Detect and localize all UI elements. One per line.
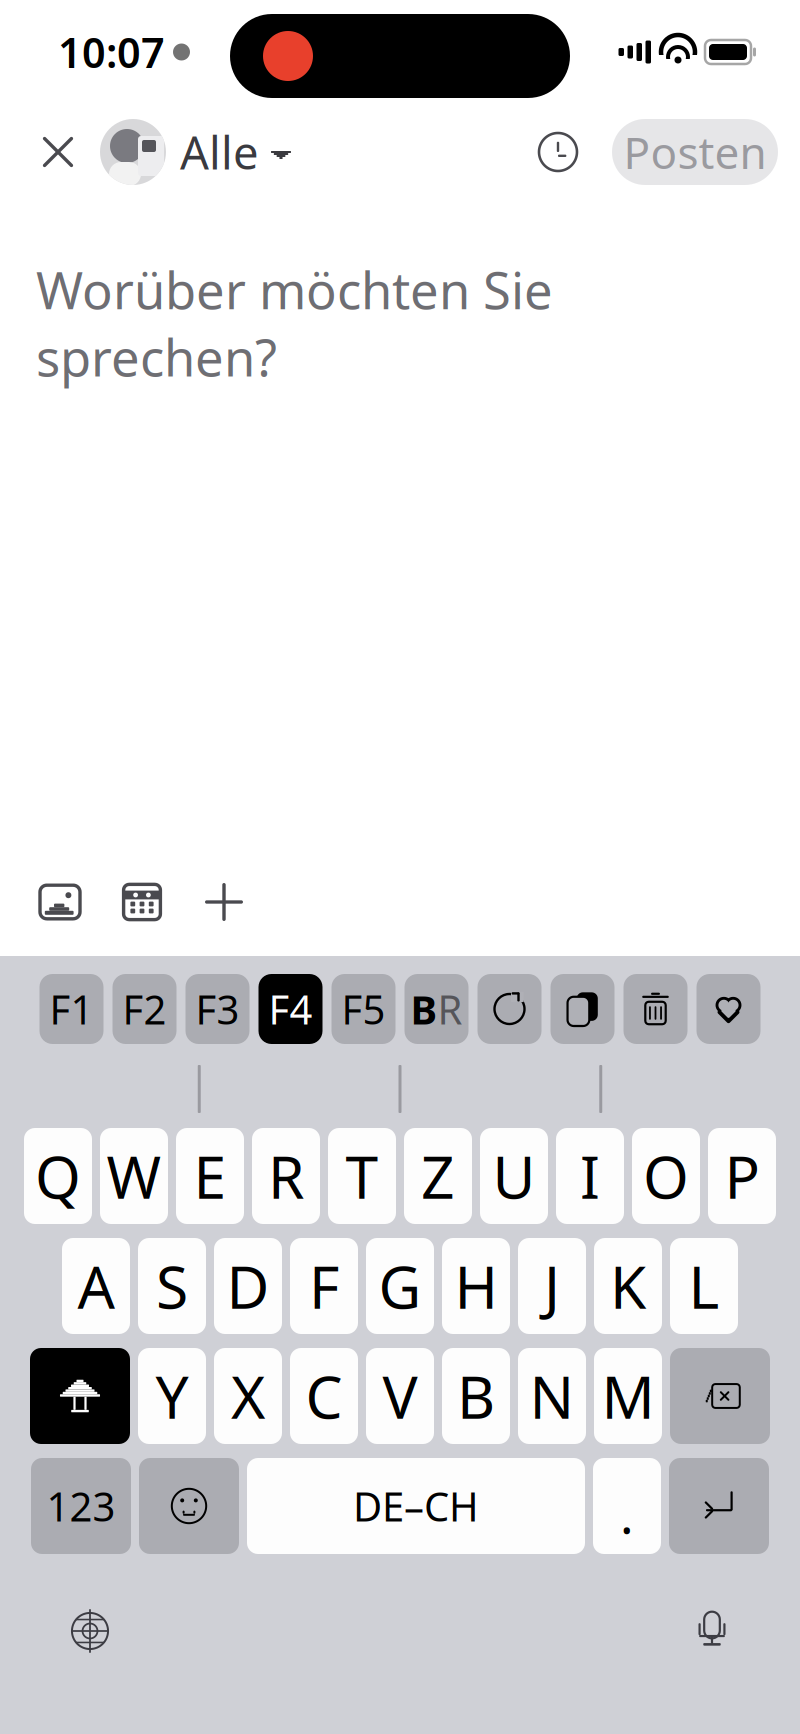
- button[interactable]: F: [290, 1238, 358, 1334]
- staticText: DE–CH: [353, 1479, 479, 1532]
- button[interactable]: [670, 1348, 770, 1444]
- staticText: B: [410, 982, 437, 1035]
- button[interactable]: M: [594, 1348, 662, 1444]
- button[interactable]: 123: [31, 1458, 131, 1554]
- button[interactable]: F3: [185, 974, 249, 1044]
- button[interactable]: Schedule: [522, 116, 594, 188]
- button[interactable]: S: [138, 1238, 206, 1334]
- button[interactable]: E: [176, 1128, 244, 1224]
- staticText: O: [643, 1137, 689, 1215]
- button[interactable]: J: [518, 1238, 586, 1334]
- staticText: N: [529, 1357, 574, 1435]
- button[interactable]: D: [214, 1238, 282, 1334]
- button[interactable]: K: [594, 1238, 662, 1334]
- button[interactable]: G: [366, 1238, 434, 1334]
- staticText: U: [492, 1137, 535, 1215]
- staticText: F5: [341, 982, 385, 1035]
- button[interactable]: Posten: [612, 119, 778, 185]
- staticText: L: [688, 1247, 719, 1325]
- button[interactable]: B: [442, 1348, 510, 1444]
- button[interactable]: P: [708, 1128, 776, 1224]
- button[interactable]: [30, 1348, 130, 1444]
- staticText: H: [454, 1247, 497, 1325]
- staticText: I: [580, 1137, 600, 1215]
- button[interactable]: [477, 974, 541, 1044]
- staticText: K: [610, 1247, 646, 1325]
- button[interactable]: H: [442, 1238, 510, 1334]
- button[interactable]: [139, 1458, 239, 1554]
- staticText: E: [193, 1137, 226, 1215]
- button[interactable]: [623, 974, 687, 1044]
- button[interactable]: A: [62, 1238, 130, 1334]
- staticText: S: [156, 1247, 188, 1325]
- staticText: Q: [35, 1137, 81, 1215]
- button[interactable]: Y: [138, 1348, 206, 1444]
- staticText: 10:07: [58, 25, 165, 79]
- staticText: 123: [46, 1479, 115, 1532]
- staticText: C: [305, 1357, 342, 1435]
- button[interactable]: R: [252, 1128, 320, 1224]
- button[interactable]: U: [480, 1128, 548, 1224]
- button[interactable]: F5: [331, 974, 395, 1044]
- button[interactable]: [669, 1458, 769, 1554]
- staticText: R: [268, 1137, 304, 1215]
- staticText: V: [382, 1357, 417, 1435]
- button[interactable]: [696, 974, 760, 1044]
- staticText: F3: [195, 982, 239, 1035]
- button[interactable]: Dictate: [674, 1593, 750, 1669]
- button[interactable]: N: [518, 1348, 586, 1444]
- button[interactable]: F4: [258, 974, 322, 1044]
- staticText: A: [77, 1247, 114, 1325]
- button[interactable]: Add photo: [22, 864, 98, 940]
- staticText: Alle: [180, 122, 259, 182]
- button[interactable]: X: [214, 1348, 282, 1444]
- button[interactable]: B: [404, 974, 468, 1044]
- button[interactable]: Close: [22, 116, 94, 188]
- staticText: P: [724, 1137, 759, 1215]
- button[interactable]: W: [100, 1128, 168, 1224]
- button[interactable]: O: [632, 1128, 700, 1224]
- staticText: X: [231, 1357, 265, 1435]
- staticText: Worüber möchten Sie sprechen?: [36, 256, 553, 391]
- button[interactable]: Q: [24, 1128, 92, 1224]
- staticText: Y: [155, 1357, 188, 1435]
- button[interactable]: .: [593, 1458, 661, 1554]
- button[interactable]: Add event: [104, 864, 180, 940]
- button[interactable]: Next keyboard: [52, 1593, 128, 1669]
- button[interactable]: T: [328, 1128, 396, 1224]
- button[interactable]: Alle: [100, 119, 291, 185]
- staticText: F2: [122, 982, 166, 1035]
- staticText: Z: [421, 1137, 455, 1215]
- staticText: .: [620, 1480, 634, 1548]
- button[interactable]: [550, 974, 614, 1044]
- staticText: F1: [49, 982, 93, 1035]
- button[interactable]: L: [670, 1238, 738, 1334]
- staticText: R: [437, 982, 462, 1035]
- staticText: J: [544, 1247, 560, 1325]
- staticText: F4: [268, 982, 312, 1035]
- staticText: B: [457, 1357, 495, 1435]
- staticText: M: [601, 1357, 654, 1435]
- button[interactable]: I: [556, 1128, 624, 1224]
- staticText: D: [226, 1247, 269, 1325]
- staticText: T: [345, 1137, 378, 1215]
- staticText: G: [378, 1247, 421, 1325]
- button[interactable]: F2: [112, 974, 176, 1044]
- button[interactable]: Z: [404, 1128, 472, 1224]
- staticText: W: [106, 1137, 161, 1215]
- staticText: Posten: [623, 123, 766, 181]
- button[interactable]: DE–CH: [247, 1458, 585, 1554]
- button[interactable]: More options: [186, 864, 262, 940]
- button[interactable]: F1: [39, 974, 103, 1044]
- button[interactable]: C: [290, 1348, 358, 1444]
- staticText: F: [309, 1247, 339, 1325]
- button[interactable]: V: [366, 1348, 434, 1444]
